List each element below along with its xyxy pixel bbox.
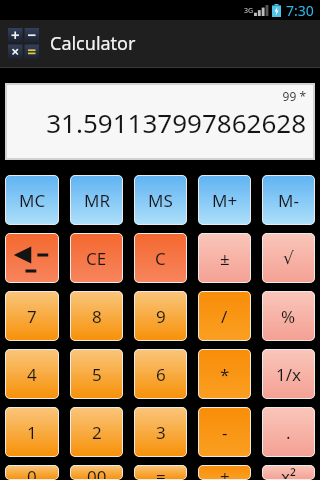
- button[interactable]: 4: [5, 349, 59, 399]
- button[interactable]: %: [262, 291, 315, 341]
- staticText: C: [155, 247, 166, 270]
- button[interactable]: 7: [5, 291, 59, 341]
- staticText: ±: [220, 247, 230, 270]
- staticText: 0: [27, 465, 37, 480]
- staticText: -: [222, 421, 228, 444]
- staticText: 4: [27, 363, 37, 386]
- staticText: M+: [212, 189, 238, 212]
- button[interactable]: √: [262, 233, 315, 283]
- staticText: 3: [156, 421, 166, 444]
- button[interactable]: 0: [5, 465, 59, 480]
- button[interactable]: MS: [134, 175, 187, 225]
- staticText: MS: [148, 189, 173, 212]
- staticText: MC: [19, 189, 46, 212]
- button[interactable]: 5: [70, 349, 123, 399]
- button[interactable]: /: [198, 291, 251, 341]
- button[interactable]: 9: [134, 291, 187, 341]
- staticText: 3G: [244, 6, 254, 16]
- staticText: √: [283, 248, 294, 268]
- button[interactable]: x²: [262, 465, 315, 480]
- button[interactable]: M-: [262, 175, 315, 225]
- button[interactable]: -: [198, 407, 251, 457]
- staticText: 2: [92, 421, 102, 444]
- staticText: *: [220, 363, 230, 386]
- button[interactable]: +: [198, 465, 251, 480]
- staticText: 7: [27, 305, 37, 328]
- staticText: 1/x: [276, 363, 302, 386]
- button[interactable]: ±: [198, 233, 251, 283]
- button[interactable]: MR: [70, 175, 123, 225]
- button[interactable]: *: [198, 349, 251, 399]
- button[interactable]: 6: [134, 349, 187, 399]
- staticText: 7:30: [286, 1, 314, 20]
- staticText: /: [221, 305, 228, 328]
- staticText: 00: [87, 465, 107, 480]
- button[interactable]: 99 *: [7, 85, 313, 158]
- staticText: 8: [92, 305, 102, 328]
- staticText: .: [286, 421, 291, 444]
- button[interactable]: 8: [70, 291, 123, 341]
- staticText: CE: [86, 247, 107, 270]
- button[interactable]: MC: [5, 175, 59, 225]
- button[interactable]: C: [134, 233, 187, 283]
- button[interactable]: 1: [5, 407, 59, 457]
- staticText: 31.591137997862628: [14, 105, 306, 140]
- button[interactable]: =: [134, 465, 187, 480]
- staticText: M-: [278, 189, 299, 212]
- button[interactable]: Backspace: [5, 233, 59, 283]
- staticText: 6: [156, 363, 166, 386]
- staticText: MR: [84, 189, 110, 212]
- button[interactable]: .: [262, 407, 315, 457]
- staticText: 9: [156, 305, 166, 328]
- staticText: 99 *: [14, 88, 306, 104]
- button[interactable]: 2: [70, 407, 123, 457]
- staticText: Calculator: [50, 31, 136, 56]
- button[interactable]: 00: [70, 465, 123, 480]
- staticText: +: [220, 465, 230, 480]
- staticText: 5: [92, 363, 102, 386]
- staticText: 1: [27, 421, 37, 444]
- button[interactable]: CE: [70, 233, 123, 283]
- staticText: =: [156, 465, 166, 480]
- staticText: %: [281, 305, 296, 328]
- staticText: x²: [281, 465, 296, 480]
- button[interactable]: M+: [198, 175, 251, 225]
- button[interactable]: 1/x: [262, 349, 315, 399]
- button[interactable]: 3: [134, 407, 187, 457]
